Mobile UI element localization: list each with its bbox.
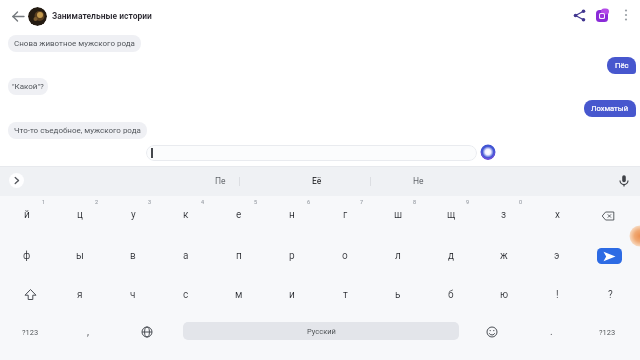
button[interactable]: ь	[376, 281, 420, 309]
staticText: в	[130, 250, 136, 262]
button[interactable]	[573, 9, 586, 22]
button[interactable]	[595, 8, 610, 23]
button[interactable]: к	[164, 201, 208, 229]
staticText: Занимательные истории	[52, 11, 152, 21]
button[interactable]: и	[270, 281, 314, 309]
button[interactable]	[617, 174, 631, 188]
button[interactable]: ж	[482, 242, 526, 270]
button[interactable]: т	[323, 281, 367, 309]
staticText: Пёс	[615, 61, 629, 70]
button[interactable]: о	[323, 242, 367, 270]
staticText: к	[183, 209, 189, 221]
staticText: а	[183, 250, 189, 262]
button[interactable]: ?123	[8, 318, 52, 346]
button[interactable]: Что-то съедобное, мужского рода	[8, 122, 147, 139]
staticText: о	[342, 250, 348, 262]
button[interactable]: Не	[396, 167, 440, 195]
button[interactable]	[9, 173, 24, 188]
staticText: ?123	[22, 328, 39, 337]
button[interactable]: м	[217, 281, 261, 309]
button[interactable]: л	[376, 242, 420, 270]
button[interactable]: ы	[58, 242, 102, 270]
button[interactable]: р	[270, 242, 314, 270]
staticText: Пе	[215, 176, 226, 186]
button[interactable]: Русский	[183, 322, 459, 340]
staticText: Снова животное мужского рода	[14, 39, 135, 48]
staticText: 3	[148, 199, 152, 205]
button[interactable]: с	[164, 281, 208, 309]
button[interactable]	[601, 211, 615, 221]
staticText: "Какой"?	[12, 82, 44, 91]
staticText: Русский	[307, 327, 336, 336]
button[interactable]: Её	[295, 167, 339, 195]
staticText: 6	[307, 199, 311, 205]
staticText: й	[24, 209, 30, 221]
button[interactable]: ,	[66, 318, 110, 346]
button[interactable]: э	[535, 242, 579, 270]
button[interactable]: ф	[5, 242, 49, 270]
staticText: .	[550, 326, 553, 338]
button[interactable]: ч	[111, 281, 155, 309]
button[interactable]: у	[111, 201, 155, 229]
staticText: л	[395, 250, 401, 262]
button[interactable]: е	[217, 201, 261, 229]
staticText: Что-то съедобное, мужского рода	[14, 126, 141, 135]
button[interactable]: п	[217, 242, 261, 270]
staticText: е	[236, 209, 242, 221]
button[interactable]: з	[482, 201, 526, 229]
staticText: 8	[413, 199, 417, 205]
staticText: 1	[42, 199, 46, 205]
button[interactable]: ?	[588, 281, 632, 309]
button[interactable]	[480, 144, 496, 160]
staticText: д	[448, 250, 455, 262]
button[interactable]	[23, 288, 38, 301]
staticText: з	[501, 209, 507, 221]
button[interactable]: "Какой"?	[8, 78, 48, 95]
button[interactable]: Лохматый	[584, 100, 636, 117]
staticText: ж	[500, 250, 508, 262]
staticText: щ	[447, 209, 456, 221]
staticText: п	[236, 250, 242, 262]
button[interactable]	[28, 7, 47, 26]
staticText: Лохматый	[591, 104, 629, 113]
staticText: у	[131, 209, 136, 221]
button[interactable]: х	[535, 201, 579, 229]
button[interactable]: щ	[429, 201, 473, 229]
button[interactable]: Снова животное мужского рода	[8, 35, 141, 52]
staticText: ц	[77, 209, 83, 221]
staticText: ф	[23, 250, 31, 262]
button[interactable]: я	[58, 281, 102, 309]
button[interactable]	[597, 248, 622, 264]
staticText: ь	[395, 289, 401, 301]
staticText: р	[289, 250, 295, 262]
staticText: и	[289, 289, 295, 301]
button[interactable]: Пе	[198, 167, 242, 195]
button[interactable]: ц	[58, 201, 102, 229]
staticText: ?	[608, 289, 613, 301]
button[interactable]	[146, 145, 477, 161]
staticText: 7	[360, 199, 364, 205]
button[interactable]: !	[535, 281, 579, 309]
staticText: ?123	[599, 328, 616, 337]
staticText: !	[556, 289, 559, 301]
button[interactable]: ю	[482, 281, 526, 309]
button[interactable]: в	[111, 242, 155, 270]
button[interactable]	[12, 10, 25, 23]
button[interactable]	[621, 9, 631, 23]
staticText: б	[448, 289, 454, 301]
button[interactable]	[141, 326, 153, 338]
button[interactable]: Пёс	[607, 57, 636, 74]
button[interactable]: б	[429, 281, 473, 309]
button[interactable]: ?123	[585, 318, 629, 346]
button[interactable]: ш	[376, 201, 420, 229]
button[interactable]: г	[323, 201, 367, 229]
button[interactable]: а	[164, 242, 208, 270]
staticText: Не	[413, 176, 424, 186]
button[interactable]: н	[270, 201, 314, 229]
button[interactable]: й	[5, 201, 49, 229]
staticText: 4	[201, 199, 205, 205]
button[interactable]: .	[529, 318, 573, 346]
button[interactable]	[486, 326, 498, 338]
staticText: г	[343, 209, 348, 221]
button[interactable]: д	[429, 242, 473, 270]
